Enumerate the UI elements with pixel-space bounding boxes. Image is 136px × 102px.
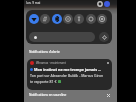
staticText: Winamax · maintenant [36,61,66,65]
staticText: Notifications d'alerte [29,50,60,54]
button[interactable]: Sound mode [40,14,50,24]
button[interactable]: Settings [96,0,103,7]
button[interactable]: Auto brightness [99,32,109,42]
staticText: Mon instinct ne me trompe jamais ... [34,67,102,72]
button[interactable]: Auto rotate [86,14,96,24]
staticText: Notifications en sourdine [29,93,67,97]
button[interactable]: Screen record [97,14,107,24]
button[interactable]: User account [104,1,110,7]
button[interactable]: Clear all notifications [105,92,111,98]
button[interactable]: Wi-Fi [29,14,39,24]
button[interactable]: Flashlight [74,14,84,24]
button[interactable]: Brightness [29,32,95,42]
staticText: lun. 9 mai [26,1,41,5]
staticText: te rapporte 81 € [30,79,57,84]
button[interactable]: Bluetooth [52,14,62,24]
button[interactable]: Notifications en sourdine [29,92,111,98]
button[interactable]: Do not disturb [63,14,73,24]
staticText: Ton pari sur Alexander Bublik - Marcus G… [30,73,104,78]
button[interactable]: Winamax · maintenant [27,59,112,90]
